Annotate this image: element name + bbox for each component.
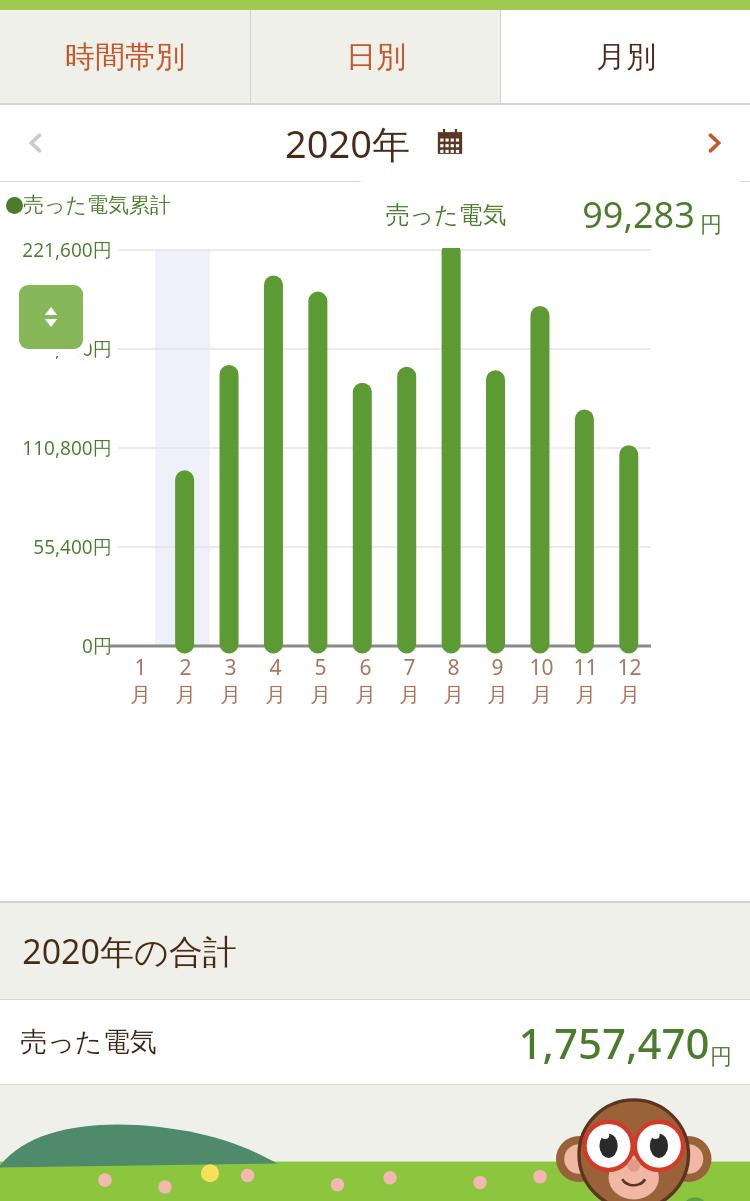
staticText: 0円 bbox=[82, 633, 112, 659]
staticText: 月 bbox=[399, 682, 420, 708]
staticText: 166,200円 bbox=[22, 336, 112, 362]
staticText: 月 bbox=[130, 682, 151, 708]
staticText: 円 bbox=[710, 1043, 732, 1071]
staticText: 12 bbox=[617, 653, 642, 682]
staticText: 5 bbox=[314, 653, 327, 682]
staticText: 55,400円 bbox=[33, 534, 112, 560]
staticText: 9 bbox=[491, 653, 504, 682]
staticText: 3 bbox=[224, 653, 237, 682]
staticText: 日別 bbox=[346, 38, 406, 76]
staticText: 99,283 bbox=[582, 190, 695, 239]
staticText: 月 bbox=[310, 682, 331, 708]
staticText: 月 bbox=[443, 682, 464, 708]
staticText: 月 bbox=[265, 682, 286, 708]
button[interactable]: Toggle scale bbox=[19, 285, 83, 349]
staticText: 月別 bbox=[596, 38, 656, 76]
staticText: 1,757,470 bbox=[518, 1014, 710, 1071]
button[interactable]: 売った電気 bbox=[0, 1000, 750, 1084]
staticText: 月 bbox=[487, 682, 508, 708]
staticText: 11 bbox=[573, 653, 598, 682]
staticText: 7 bbox=[403, 653, 416, 682]
staticText: 6 bbox=[359, 653, 372, 682]
button[interactable]: 売った電気 bbox=[351, 181, 750, 248]
button[interactable]: 時間帯別 bbox=[0, 10, 250, 103]
button[interactable]: 日別 bbox=[251, 10, 500, 103]
staticText: 売った電気 bbox=[20, 1025, 157, 1059]
staticText: 2 bbox=[179, 653, 192, 682]
staticText: 月 bbox=[175, 682, 196, 708]
staticText: 時間帯別 bbox=[65, 38, 185, 76]
staticText: 4 bbox=[269, 653, 282, 682]
staticText: 月 bbox=[619, 682, 640, 708]
button[interactable]: 月別 bbox=[501, 10, 750, 103]
staticText: 221,600円 bbox=[22, 237, 112, 263]
staticText: 売った電気 bbox=[385, 200, 507, 230]
button[interactable]: Next year bbox=[678, 105, 750, 181]
staticText: 円 bbox=[700, 211, 722, 239]
staticText: 月 bbox=[531, 682, 552, 708]
staticText: 2020年 bbox=[285, 117, 410, 169]
staticText: 2020年の合計 bbox=[22, 928, 237, 974]
staticText: 月 bbox=[355, 682, 376, 708]
button[interactable]: 2020年 bbox=[285, 117, 466, 169]
staticText: 110,800円 bbox=[22, 435, 112, 461]
staticText: 月 bbox=[220, 682, 241, 708]
button[interactable]: Previous year bbox=[0, 105, 72, 181]
staticText: 月 bbox=[575, 682, 596, 708]
staticText: 売った電気累計 bbox=[23, 192, 171, 218]
staticText: 10 bbox=[529, 653, 554, 682]
staticText: 8 bbox=[447, 653, 460, 682]
staticText: 1 bbox=[134, 653, 147, 682]
